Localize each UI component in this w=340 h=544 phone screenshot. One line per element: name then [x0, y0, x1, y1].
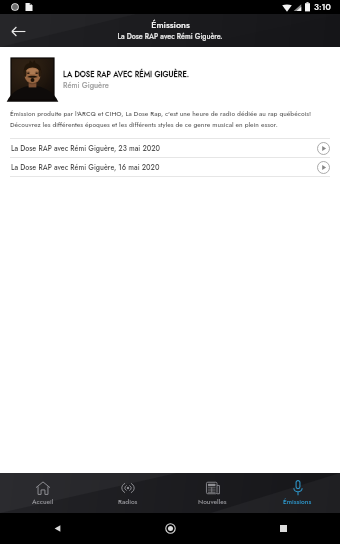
staticText: Émissions: [151, 18, 190, 31]
button[interactable]: Recent apps: [227, 513, 340, 544]
staticText: La Dose RAP avec Rémi Giguère.: [117, 31, 223, 41]
button[interactable]: Émissions: [255, 473, 340, 513]
staticText: La Dose RAP avec Rémi Giguère, 16 mai 20…: [11, 162, 160, 172]
button[interactable]: Back: [6, 19, 30, 43]
staticText: Radios: [118, 497, 138, 507]
button[interactable]: La Dose RAP avec Rémi Giguère, 16 mai 20…: [0, 157, 340, 176]
button[interactable]: La Dose RAP avec Rémi Giguère, 23 mai 20…: [0, 138, 340, 157]
staticText: 3:10: [314, 1, 331, 13]
staticText: Accueil: [32, 497, 54, 507]
button[interactable]: Accueil: [0, 473, 85, 513]
staticText: Rémi Giguère: [63, 80, 109, 91]
staticText: La Dose RAP avec Rémi Giguère, 23 mai 20…: [11, 143, 161, 153]
staticText: LA DOSE RAP AVEC RÉMI GIGUÈRE.: [63, 69, 190, 80]
staticText: Nouvelles: [198, 497, 227, 507]
button[interactable]: Nouvelles: [170, 473, 255, 513]
button[interactable]: Back: [0, 513, 114, 544]
button[interactable]: Radios: [85, 473, 170, 513]
staticText: Émission produite par l'ARCQ et CIHO, La…: [10, 109, 330, 129]
staticText: Émissions: [283, 497, 312, 507]
button[interactable]: Home: [114, 513, 227, 544]
